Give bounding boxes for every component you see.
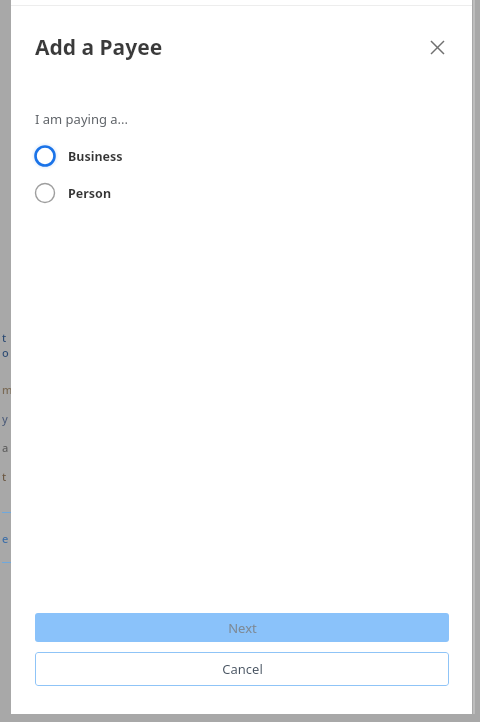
staticText: m [2, 382, 11, 397]
button[interactable]: Person [31, 179, 191, 207]
staticText: y [2, 411, 8, 426]
staticText: Next [228, 619, 257, 637]
button[interactable]: Cancel [35, 652, 449, 686]
staticText: a [2, 440, 9, 455]
staticText: to [2, 330, 11, 360]
staticText: t [2, 469, 7, 484]
staticText: Person [68, 185, 112, 202]
staticText: Business [68, 148, 123, 165]
button[interactable]: Close [416, 26, 458, 68]
staticText: Cancel [222, 660, 263, 678]
button[interactable]: Business [31, 142, 191, 170]
button[interactable]: Next [35, 613, 449, 642]
staticText: Add a Payee [35, 33, 163, 62]
staticText: e [2, 531, 9, 546]
staticText: I am paying a... [35, 110, 129, 128]
